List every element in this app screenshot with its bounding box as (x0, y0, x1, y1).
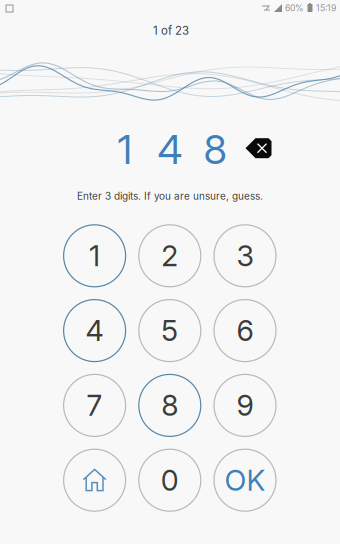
button[interactable]: Home (64, 449, 126, 511)
button[interactable]: 2 (139, 225, 201, 287)
staticText: 15:19 (316, 3, 336, 13)
button[interactable]: 3 (214, 225, 276, 287)
staticText: 60% (285, 3, 304, 13)
staticText: 1 (89, 238, 100, 273)
staticText: 1 of 23 (153, 24, 189, 37)
button[interactable]: 7 (64, 374, 126, 436)
button[interactable]: 1 (64, 225, 126, 287)
button[interactable]: 0 (139, 449, 201, 511)
staticText: OK (224, 463, 265, 498)
button[interactable]: OK (214, 449, 276, 511)
staticText: 4 (157, 125, 182, 174)
staticText: 2 (161, 238, 178, 273)
staticText: 8 (161, 388, 178, 423)
staticText: 4 (86, 313, 104, 348)
button[interactable]: 5 (139, 300, 201, 362)
staticText: 7 (87, 388, 103, 423)
staticText: 0 (161, 463, 179, 498)
staticText: 3 (236, 238, 253, 273)
button[interactable]: 8 (139, 374, 201, 436)
button[interactable]: Delete (245, 138, 272, 159)
staticText: Enter 3 digits. If you are unsure, guess… (77, 190, 263, 202)
staticText: 1 (117, 125, 132, 174)
staticText: 6 (236, 313, 253, 348)
button[interactable]: 6 (214, 300, 276, 362)
staticText: 8 (203, 125, 226, 174)
button[interactable]: 4 (64, 300, 126, 362)
staticText: 5 (161, 313, 178, 348)
button[interactable]: 9 (214, 374, 276, 436)
staticText: 9 (236, 388, 253, 423)
